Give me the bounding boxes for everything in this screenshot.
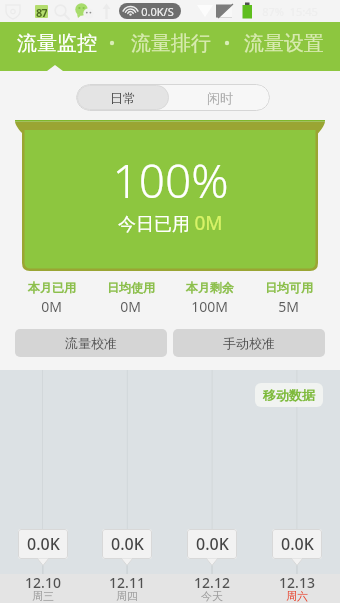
staticText: 今日已用 (118, 213, 190, 236)
staticText: 0.0K (27, 533, 60, 555)
staticText: 0.0K (111, 533, 144, 555)
staticText: 12.13 (279, 573, 315, 592)
staticText: 12.11 (109, 573, 145, 592)
staticText: 0M (120, 297, 141, 316)
staticText: 0.0K (281, 533, 314, 555)
button[interactable]: 闲时 (170, 84, 270, 111)
staticText: 日常 (110, 90, 136, 106)
staticText: 0M (41, 297, 62, 316)
staticText: 日均可用 (265, 280, 313, 295)
button[interactable]: 日常 (77, 85, 169, 110)
staticText: 100% (112, 149, 229, 212)
staticText: 0.0K/S (141, 4, 174, 19)
staticText: 12.10 (25, 573, 61, 592)
button[interactable]: 流量设置 (227, 22, 340, 64)
button[interactable]: 手动校准 (173, 329, 325, 357)
staticText: 5M (278, 297, 299, 316)
staticText: 今天 (201, 589, 223, 603)
staticText: 周四 (116, 589, 138, 603)
staticText: 0.0K (196, 533, 229, 555)
staticText: 0M (194, 210, 223, 236)
staticText: 本月剩余 (186, 280, 234, 295)
staticText: 移动数据 (263, 387, 315, 403)
button[interactable]: 流量校准 (15, 329, 167, 357)
staticText: 流量校准 (65, 335, 117, 351)
staticText: 周六 (286, 589, 308, 603)
staticText: 87 (36, 5, 47, 18)
staticText: 日均使用 (107, 280, 155, 295)
staticText: 流量监控 (17, 31, 97, 56)
staticText: 流量设置 (244, 31, 324, 56)
staticText: 闲时 (207, 90, 233, 106)
button[interactable]: 流量监控 (0, 22, 114, 64)
staticText: 流量排行 (131, 31, 211, 56)
staticText: 12.12 (194, 573, 230, 592)
staticText: 本月已用 (28, 280, 76, 295)
staticText: 周三 (32, 589, 54, 603)
staticText: 100M (191, 297, 228, 316)
button[interactable]: 流量排行 (114, 22, 227, 64)
staticText: 手动校准 (223, 335, 275, 351)
